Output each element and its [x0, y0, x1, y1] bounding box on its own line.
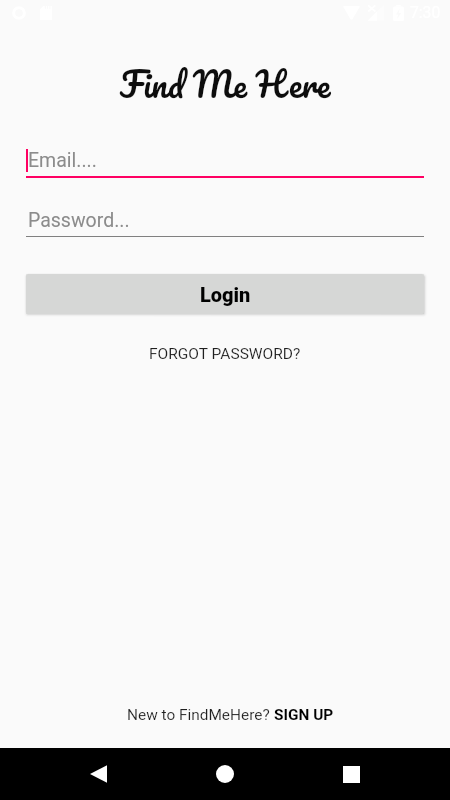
- button[interactable]: Back: [74, 748, 122, 800]
- button[interactable]: New to FindMeHere?: [119, 702, 342, 728]
- staticText: New to FindMeHere?: [127, 706, 274, 724]
- button[interactable]: Password...: [26, 202, 424, 238]
- button[interactable]: FORGOT PASSWORD?: [141, 341, 309, 367]
- staticText: Email....: [28, 149, 97, 172]
- staticText: SIGN UP: [274, 706, 334, 724]
- staticText: Password...: [28, 209, 130, 232]
- button[interactable]: Email....: [26, 142, 424, 180]
- button[interactable]: Recent apps: [327, 748, 375, 800]
- button[interactable]: Home: [201, 748, 249, 800]
- button[interactable]: Login: [26, 274, 424, 314]
- staticText: Find Me Here: [0, 55, 450, 113]
- staticText: Login: [200, 283, 251, 306]
